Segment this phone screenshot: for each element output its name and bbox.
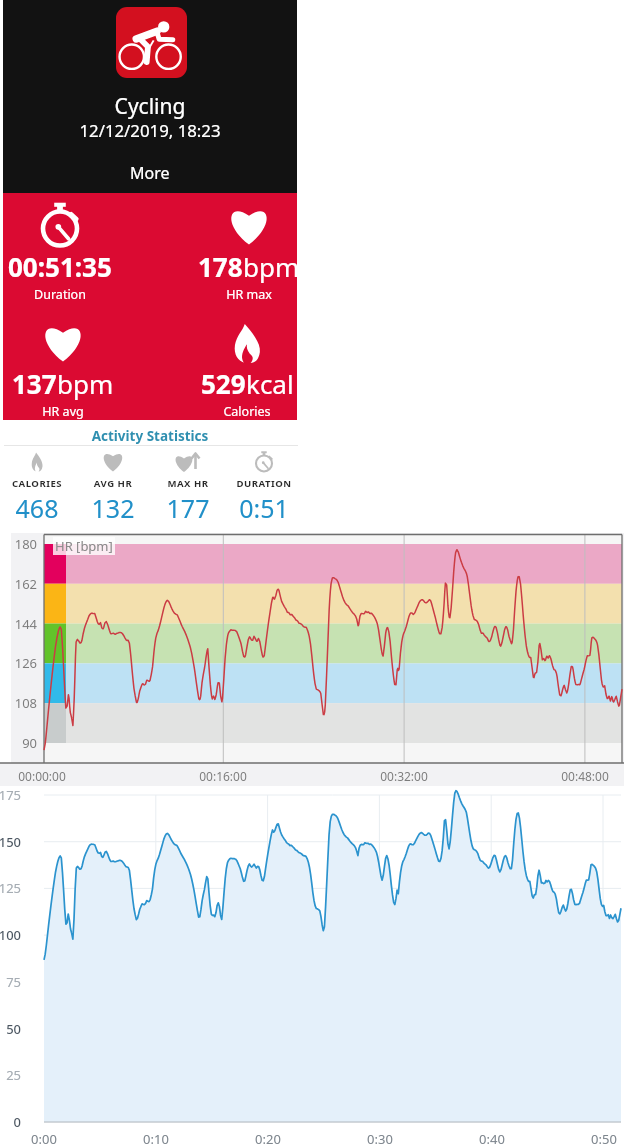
staticText: 125 bbox=[0, 879, 21, 897]
button[interactable]: 137 bbox=[0, 320, 136, 424]
staticText: kcal bbox=[246, 366, 294, 401]
staticText: 0 bbox=[0, 1113, 21, 1131]
staticText: 132 bbox=[75, 491, 151, 525]
staticText: 0:40 bbox=[462, 1130, 522, 1148]
staticText: 144 bbox=[0, 615, 37, 633]
staticText: 175 bbox=[0, 786, 21, 804]
button[interactable]: 529 bbox=[174, 320, 320, 424]
staticText: bpm bbox=[57, 366, 114, 401]
staticText: 0:50 bbox=[574, 1130, 624, 1148]
staticText: HR max bbox=[176, 286, 322, 303]
staticText: HR [bpm] bbox=[55, 537, 113, 555]
staticText: 0:51 bbox=[226, 491, 302, 525]
button[interactable]: AVG HR bbox=[75, 450, 151, 520]
staticText: 468 bbox=[0, 491, 75, 525]
button[interactable]: MAX HR bbox=[150, 450, 226, 520]
staticText: 529 bbox=[201, 366, 246, 401]
staticText: 0:20 bbox=[238, 1130, 298, 1148]
staticText: HR avg bbox=[0, 403, 136, 420]
button[interactable]: More bbox=[113, 160, 187, 186]
staticText: 137 bbox=[12, 366, 57, 401]
staticText: 180 bbox=[0, 535, 37, 553]
staticText: 50 bbox=[0, 1020, 21, 1038]
button[interactable]: Cycling activity bbox=[116, 7, 187, 78]
staticText: 150 bbox=[0, 833, 21, 851]
staticText: 162 bbox=[0, 575, 37, 593]
button[interactable]: 00:51:35 bbox=[0, 203, 133, 307]
staticText: 12/12/2019, 18:23 bbox=[3, 119, 297, 142]
staticText: 177 bbox=[150, 491, 226, 525]
staticText: 00:00:00 bbox=[2, 768, 82, 784]
button[interactable]: CALORIES bbox=[0, 450, 75, 520]
staticText: 108 bbox=[0, 694, 37, 712]
staticText: More bbox=[130, 162, 170, 184]
staticText: 100 bbox=[0, 926, 21, 944]
staticText: 0:00 bbox=[14, 1130, 74, 1148]
staticText: 00:16:00 bbox=[183, 768, 263, 784]
staticText: 0:30 bbox=[350, 1130, 410, 1148]
staticText: 126 bbox=[0, 654, 37, 672]
staticText: DURATION bbox=[226, 477, 302, 490]
staticText: 75 bbox=[0, 973, 21, 991]
staticText: Cycling bbox=[3, 92, 297, 121]
staticText: Duration bbox=[0, 286, 133, 303]
staticText: Calories bbox=[174, 403, 320, 420]
staticText: MAX HR bbox=[150, 477, 226, 490]
staticText: 00:48:00 bbox=[545, 768, 624, 784]
staticText: 00:51:35 bbox=[8, 249, 112, 284]
staticText: AVG HR bbox=[75, 477, 151, 490]
button[interactable]: DURATION bbox=[226, 450, 302, 520]
staticText: bpm bbox=[243, 249, 300, 284]
staticText: 90 bbox=[0, 734, 37, 752]
button[interactable]: 178 bbox=[176, 203, 322, 307]
staticText: Activity Statistics bbox=[0, 427, 300, 445]
staticText: 0:10 bbox=[126, 1130, 186, 1148]
staticText: 00:32:00 bbox=[364, 768, 444, 784]
staticText: CALORIES bbox=[0, 477, 75, 490]
staticText: 25 bbox=[0, 1066, 21, 1084]
staticText: 178 bbox=[198, 249, 243, 284]
